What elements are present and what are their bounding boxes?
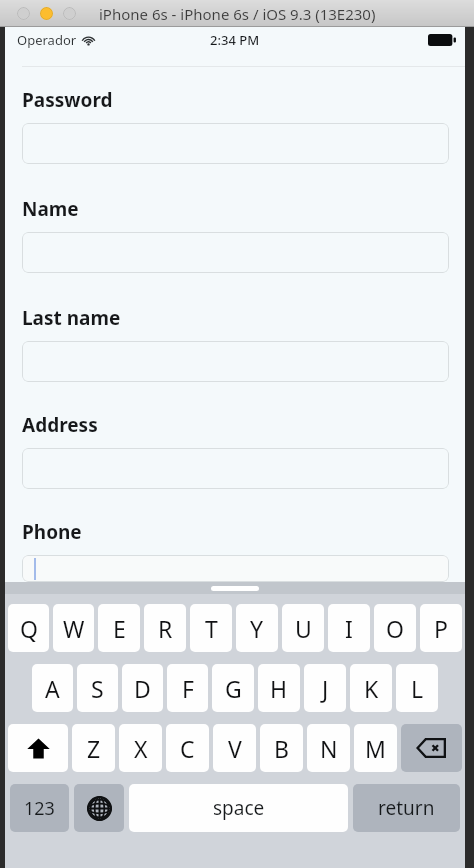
staticText: D	[134, 673, 151, 704]
button[interactable]: Z	[72, 724, 115, 772]
button[interactable]: S	[77, 664, 118, 712]
staticText: Operador	[17, 31, 77, 49]
button[interactable]: 123	[10, 784, 69, 832]
staticText: 2:34 PM	[210, 31, 260, 49]
staticText: V	[228, 733, 242, 764]
button[interactable]: N	[307, 724, 350, 772]
button[interactable]: L	[396, 664, 438, 712]
button[interactable]: E	[98, 604, 140, 652]
button[interactable]: T	[190, 604, 232, 652]
staticText: Password	[22, 87, 113, 113]
button[interactable]	[22, 123, 449, 164]
button[interactable]: U	[282, 604, 324, 652]
button[interactable]: B	[260, 724, 303, 772]
staticText: Address	[22, 412, 98, 438]
button[interactable]: F	[167, 664, 208, 712]
button[interactable]	[22, 232, 449, 273]
staticText: G	[225, 673, 242, 704]
button[interactable]: Change keyboard	[74, 784, 124, 832]
staticText: space	[213, 795, 265, 821]
button[interactable]	[22, 555, 449, 582]
staticText: Z	[87, 733, 101, 764]
staticText: E	[113, 613, 126, 644]
staticText: B	[274, 733, 289, 764]
button[interactable]: I	[328, 604, 370, 652]
button[interactable]: P	[420, 604, 462, 652]
button[interactable]: D	[122, 664, 163, 712]
button[interactable]	[22, 341, 449, 382]
staticText: F	[182, 673, 194, 704]
staticText: P	[434, 613, 448, 644]
button[interactable]: X	[119, 724, 162, 772]
staticText: C	[180, 733, 195, 764]
button[interactable]: C	[166, 724, 209, 772]
staticText: return	[378, 795, 435, 821]
staticText: 123	[24, 796, 55, 821]
button[interactable]	[22, 448, 449, 489]
button[interactable]: Shift	[8, 724, 68, 772]
staticText: Name	[22, 196, 79, 222]
button[interactable]: K	[350, 664, 392, 712]
staticText: O	[386, 613, 404, 644]
button[interactable]: J	[304, 664, 346, 712]
staticText: U	[295, 613, 312, 644]
button[interactable]: W	[53, 604, 94, 652]
staticText: Y	[250, 613, 264, 644]
staticText: T	[205, 613, 218, 644]
staticText: A	[45, 673, 60, 704]
staticText: I	[345, 613, 353, 644]
button[interactable]: space	[129, 784, 348, 832]
staticText: J	[322, 673, 329, 704]
button[interactable]: Backspace	[401, 724, 462, 772]
button[interactable]: V	[213, 724, 256, 772]
staticText: iPhone 6s - iPhone 6s / iOS 9.3 (13E230)	[99, 4, 376, 24]
staticText: S	[91, 673, 104, 704]
button[interactable]: R	[144, 604, 186, 652]
staticText: H	[270, 673, 288, 704]
staticText: K	[364, 673, 379, 704]
button[interactable]: return	[353, 784, 460, 832]
button[interactable]: G	[212, 664, 254, 712]
staticText: Q	[20, 613, 38, 644]
staticText: M	[365, 733, 386, 764]
staticText: R	[158, 613, 173, 644]
staticText: X	[134, 733, 148, 764]
button[interactable]: Q	[8, 604, 49, 652]
staticText: W	[63, 613, 85, 644]
staticText: L	[411, 673, 424, 704]
button[interactable]: Y	[236, 604, 278, 652]
staticText: Last name	[22, 305, 121, 331]
staticText: N	[320, 733, 338, 764]
button[interactable]: Resize keyboard	[211, 586, 259, 591]
button[interactable]: M	[354, 724, 397, 772]
staticText: Phone	[22, 519, 82, 545]
button[interactable]: O	[374, 604, 416, 652]
button[interactable]: A	[32, 664, 73, 712]
button[interactable]: H	[258, 664, 300, 712]
